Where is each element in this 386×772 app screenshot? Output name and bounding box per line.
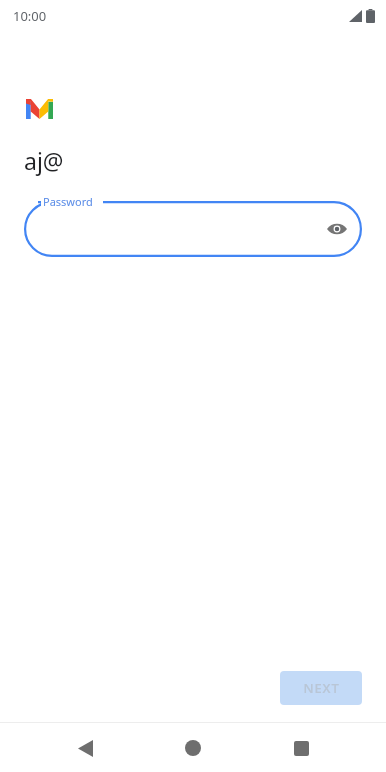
button[interactable]: Password [24,201,362,257]
button[interactable]: NEXT [280,671,362,705]
staticText: 10:00 [13,7,47,25]
button[interactable]: Recent apps [277,724,325,772]
staticText: aj@ [24,145,64,176]
staticText: NEXT [303,679,340,697]
button[interactable]: Back [61,724,109,772]
staticText: Password [43,194,93,209]
button[interactable]: Home [169,724,217,772]
button[interactable]: Show password [321,213,353,245]
